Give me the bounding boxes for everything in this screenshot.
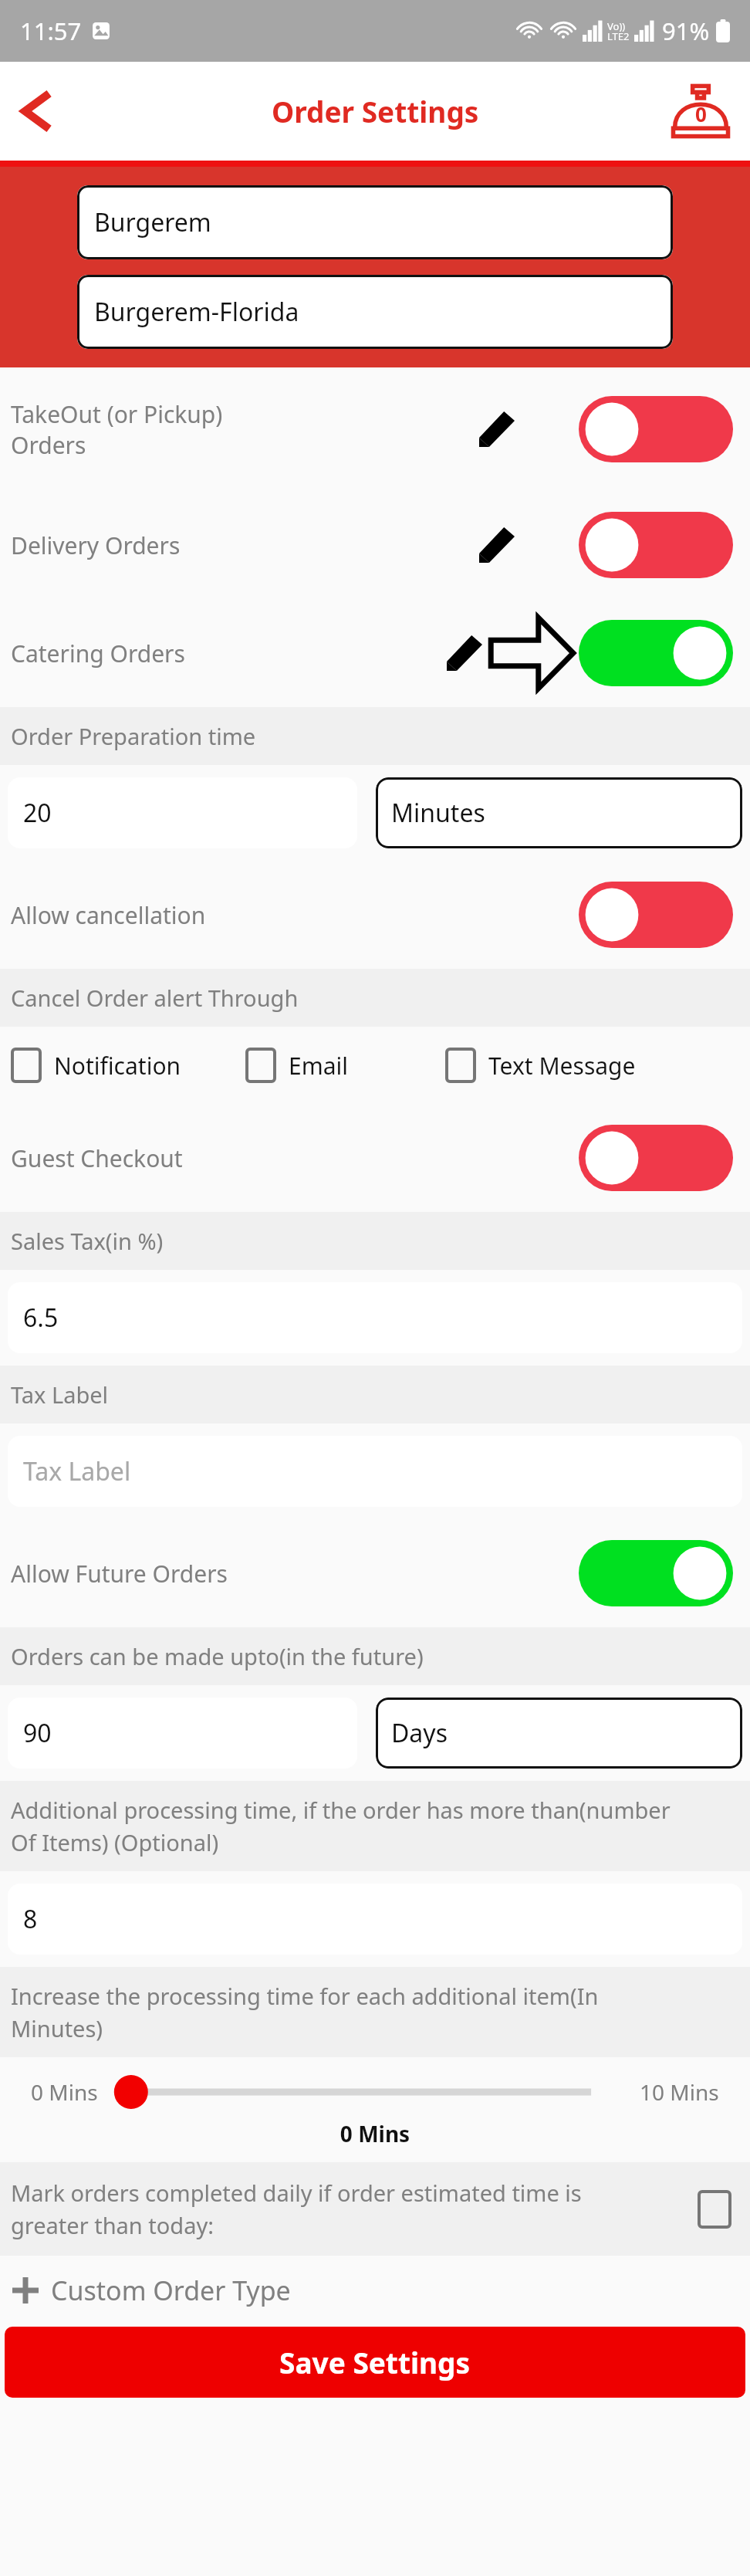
button[interactable]: Orders: [665, 76, 736, 147]
button[interactable]: 6.5: [8, 1282, 742, 1353]
staticText: Increase the processing time for each ad…: [11, 1981, 599, 2043]
staticText: Notification: [54, 1050, 181, 1082]
button[interactable]: Burgerem-Florida: [77, 275, 673, 349]
staticText: Order Settings: [272, 92, 479, 130]
staticText: Email: [289, 1050, 349, 1082]
button[interactable]: Allow Future Orders: [0, 1519, 750, 1627]
button[interactable]: Off: [579, 1125, 733, 1191]
staticText: Allow cancellation: [11, 899, 579, 931]
button[interactable]: Save Settings: [5, 2327, 745, 2398]
button[interactable]: Guest Checkout: [0, 1104, 750, 1212]
staticText: 8: [23, 1902, 38, 1936]
staticText: TakeOut (or Pickup) Orders: [11, 398, 472, 461]
button[interactable]: 20: [8, 777, 357, 848]
staticText: Vo)) LTE2: [607, 19, 630, 43]
staticText: Burgerem-Florida: [94, 295, 299, 329]
staticText: Minutes: [391, 796, 485, 830]
staticText: 20: [23, 796, 52, 830]
button[interactable]: Notification: [11, 1048, 245, 1083]
staticText: Text Message: [488, 1050, 636, 1082]
button[interactable]: Minutes: [376, 777, 742, 848]
button[interactable]: On: [579, 1540, 733, 1606]
button[interactable]: Edit: [472, 405, 522, 454]
staticText: Additional processing time, if the order…: [11, 1795, 671, 1857]
button[interactable]: 0 Mins: [31, 2065, 719, 2119]
staticText: Sales Tax(in %): [11, 1226, 164, 1256]
staticText: Mark orders completed daily if order est…: [11, 2178, 698, 2240]
staticText: Save Settings: [279, 2343, 471, 2381]
staticText: 0: [695, 100, 707, 127]
button[interactable]: Off: [579, 512, 733, 578]
button[interactable]: On: [579, 620, 733, 686]
button[interactable]: Custom Order Type: [0, 2256, 750, 2325]
button[interactable]: Mark orders completed daily if order est…: [0, 2162, 750, 2256]
button[interactable]: Catering Orders: [0, 599, 750, 707]
staticText: Tax Label: [23, 1454, 131, 1488]
staticText: 91%: [662, 15, 710, 47]
staticText: 11:57: [20, 15, 82, 47]
staticText: Orders can be made upto(in the future): [11, 1641, 424, 1671]
staticText: Cancel Order alert Through: [11, 983, 299, 1013]
staticText: Custom Order Type: [51, 2273, 291, 2308]
staticText: Tax Label: [11, 1379, 109, 1410]
button[interactable]: 8: [8, 1884, 742, 1955]
staticText: Catering Orders: [11, 638, 440, 669]
staticText: Guest Checkout: [11, 1142, 579, 1174]
button[interactable]: TakeOut (or Pickup) Orders: [0, 367, 750, 491]
staticText: 10 Mins: [640, 2077, 719, 2107]
button[interactable]: Email: [245, 1048, 445, 1083]
button[interactable]: Text Message: [445, 1048, 739, 1083]
staticText: Allow Future Orders: [11, 1558, 579, 1589]
staticText: 6.5: [23, 1301, 59, 1335]
button[interactable]: Tax Label: [8, 1436, 742, 1507]
button[interactable]: Off: [579, 882, 733, 948]
staticText: Order Preparation time: [11, 721, 256, 751]
button[interactable]: 90: [8, 1698, 357, 1769]
button[interactable]: Burgerem: [77, 185, 673, 259]
staticText: Delivery Orders: [11, 530, 472, 561]
staticText: Days: [391, 1716, 448, 1750]
button[interactable]: Back: [6, 80, 68, 142]
button[interactable]: Edit: [472, 520, 522, 570]
staticText: Burgerem: [94, 205, 211, 239]
button[interactable]: Edit: [440, 628, 489, 678]
button[interactable]: Delivery Orders: [0, 491, 750, 599]
button[interactable]: Days: [376, 1698, 742, 1769]
button[interactable]: Allow cancellation: [0, 861, 750, 969]
staticText: 90: [23, 1716, 52, 1750]
staticText: 0 Mins: [0, 2119, 750, 2148]
staticText: 0 Mins: [31, 2077, 98, 2107]
button[interactable]: Off: [579, 396, 733, 462]
